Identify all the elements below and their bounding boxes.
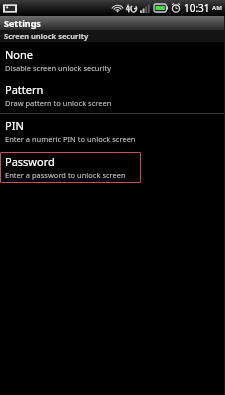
staticText: None xyxy=(5,47,34,62)
staticText: Draw pattern to unlock screen xyxy=(5,98,112,108)
staticText: Screen unlock security xyxy=(4,31,89,41)
staticText: Password xyxy=(5,154,55,169)
staticText: Disable screen unlock security xyxy=(5,63,112,73)
button[interactable]: Password xyxy=(0,152,141,183)
staticText: PIN xyxy=(5,118,24,133)
button[interactable]: Pattern xyxy=(0,80,225,111)
staticText: 10:31 xyxy=(184,1,210,15)
staticText: Pattern xyxy=(5,82,44,97)
staticText: AM xyxy=(212,4,222,12)
staticText: Enter a numeric PIN to unlock screen xyxy=(5,134,136,144)
button[interactable]: PIN xyxy=(0,116,225,147)
staticText: Settings xyxy=(4,17,41,29)
staticText: Enter a password to unlock screen xyxy=(5,170,126,180)
button[interactable]: None xyxy=(0,45,225,76)
